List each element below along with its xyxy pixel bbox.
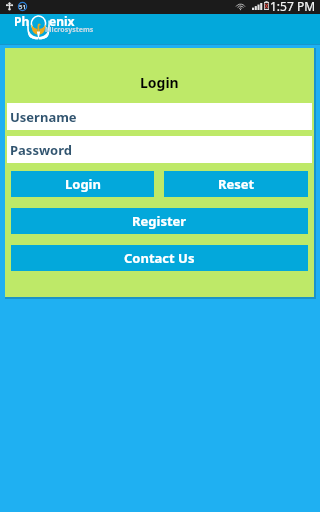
other: 51 notifications xyxy=(18,2,27,11)
other: Battery xyxy=(264,1,269,10)
staticText: enix xyxy=(49,13,75,29)
staticText: Username xyxy=(10,108,77,126)
staticText: Register xyxy=(132,212,187,230)
button[interactable]: Login xyxy=(11,171,154,197)
staticText: Contact Us xyxy=(124,249,195,267)
staticText: Password xyxy=(10,141,72,159)
button[interactable]: Username xyxy=(7,103,312,130)
button[interactable]: Contact Us xyxy=(11,245,308,271)
staticText: Login xyxy=(140,73,179,92)
staticText: Ph xyxy=(14,13,30,29)
staticText: 1:57 PM xyxy=(270,0,316,12)
button[interactable]: Password xyxy=(7,136,312,163)
other: USB connected xyxy=(6,2,13,10)
staticText: Reset xyxy=(218,175,255,193)
other: Phoenix Microsystems logo xyxy=(28,15,49,40)
staticText: Login xyxy=(65,175,101,193)
other: Wi-Fi xyxy=(236,1,245,10)
other: Cellular signal xyxy=(252,3,262,10)
button[interactable]: Register xyxy=(11,208,308,234)
button[interactable]: Reset xyxy=(164,171,308,197)
staticText: Microsystems xyxy=(45,25,94,35)
staticText: 51 xyxy=(19,3,26,11)
